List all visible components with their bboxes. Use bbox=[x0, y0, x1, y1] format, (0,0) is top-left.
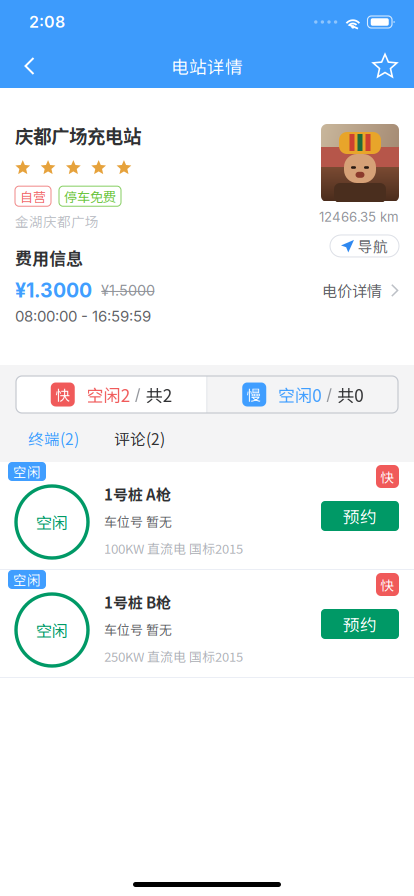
button[interactable]: 返回 bbox=[0, 44, 58, 88]
staticText: 评论(2) bbox=[114, 427, 165, 449]
staticText: / bbox=[321, 385, 337, 404]
staticText: 空闲0 bbox=[278, 382, 321, 407]
staticText: 预约 bbox=[343, 612, 377, 636]
staticText: 1号桩 A枪 bbox=[104, 483, 171, 505]
staticText: 庆都广场充电站 bbox=[15, 122, 141, 149]
staticText: 2:08 bbox=[29, 12, 65, 32]
staticText: 快 bbox=[380, 467, 394, 486]
staticText: 100KW 直流电 国标2015 bbox=[104, 538, 243, 557]
staticText: 快 bbox=[380, 575, 394, 594]
button[interactable]: 快 bbox=[16, 376, 206, 413]
staticText: 预约 bbox=[343, 504, 377, 528]
staticText: 费用信息 bbox=[15, 245, 83, 270]
button[interactable]: 收藏 bbox=[356, 44, 414, 88]
staticText: 1号桩 B枪 bbox=[104, 591, 171, 613]
staticText: 共0 bbox=[337, 382, 363, 407]
button[interactable]: 电价详情 bbox=[322, 276, 398, 305]
staticText: / bbox=[130, 385, 146, 404]
button[interactable]: 慢 bbox=[207, 376, 398, 413]
staticText: 08:00:00 - 16:59:59 bbox=[15, 307, 151, 325]
staticText: 车位号 暂无 bbox=[104, 512, 172, 530]
staticText: ¥1.5000 bbox=[101, 282, 155, 299]
button[interactable]: 空闲 bbox=[0, 462, 414, 569]
staticText: 金湖庆都广场 bbox=[15, 211, 99, 231]
button[interactable]: 终端(2) bbox=[0, 420, 97, 456]
button[interactable]: 导航 bbox=[330, 235, 399, 257]
staticText: 空闲 bbox=[36, 618, 68, 642]
button[interactable]: 空闲 bbox=[0, 570, 414, 677]
staticText: 终端(2) bbox=[28, 427, 79, 449]
staticText: 空闲 bbox=[13, 570, 41, 589]
staticText: 12466.35 km bbox=[319, 209, 399, 225]
staticText: 共2 bbox=[146, 382, 172, 407]
staticText: 自营 bbox=[20, 187, 46, 206]
staticText: 空闲2 bbox=[87, 382, 130, 407]
staticText: 停车免费 bbox=[64, 187, 116, 206]
staticText: 电价详情 bbox=[322, 280, 382, 301]
staticText: 空闲 bbox=[13, 462, 41, 481]
staticText: ¥1.3000 bbox=[15, 279, 92, 302]
staticText: 电站详情 bbox=[171, 53, 243, 79]
staticText: 慢 bbox=[247, 384, 262, 405]
staticText: 车位号 暂无 bbox=[104, 620, 172, 638]
staticText: 快 bbox=[55, 384, 70, 405]
button[interactable]: 评论(2) bbox=[97, 420, 182, 456]
staticText: 250KW 直流电 国标2015 bbox=[104, 646, 243, 665]
staticText: 空闲 bbox=[36, 510, 68, 534]
staticText: 导航 bbox=[358, 235, 388, 256]
